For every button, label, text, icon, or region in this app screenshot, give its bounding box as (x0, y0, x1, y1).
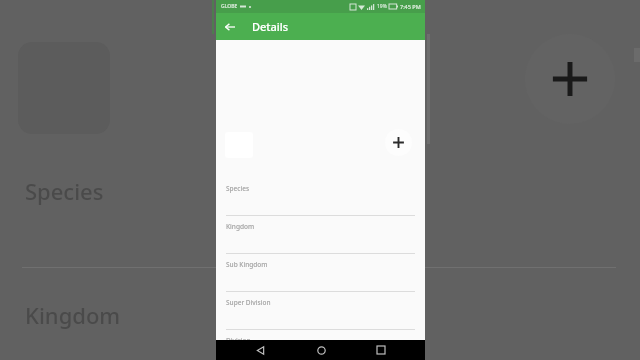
staticText: Kingdom (25, 300, 121, 330)
button[interactable]: Species (216, 178, 425, 216)
button[interactable]: Add (385, 129, 412, 156)
button[interactable]: Sub Kingdom (216, 254, 425, 292)
staticText: Species (25, 176, 104, 206)
staticText: Division (226, 336, 251, 345)
staticText: GLOBE (221, 3, 238, 10)
staticText: Species (226, 184, 250, 193)
button[interactable]: Recent apps (364, 340, 398, 360)
button[interactable]: Super Division (216, 292, 425, 330)
staticText: Kingdom (226, 222, 255, 231)
button[interactable]: Back (243, 340, 277, 360)
button[interactable]: Home (304, 340, 338, 360)
staticText: 7:45 PM (400, 3, 421, 10)
staticText: Sub Kingdom (226, 260, 268, 269)
staticText: 19% (377, 3, 387, 10)
staticText: Super Division (226, 298, 271, 307)
button[interactable]: Back (216, 13, 243, 40)
button[interactable]: Kingdom (216, 216, 425, 254)
button[interactable]: Division (216, 330, 425, 360)
staticText: Details (252, 19, 289, 34)
